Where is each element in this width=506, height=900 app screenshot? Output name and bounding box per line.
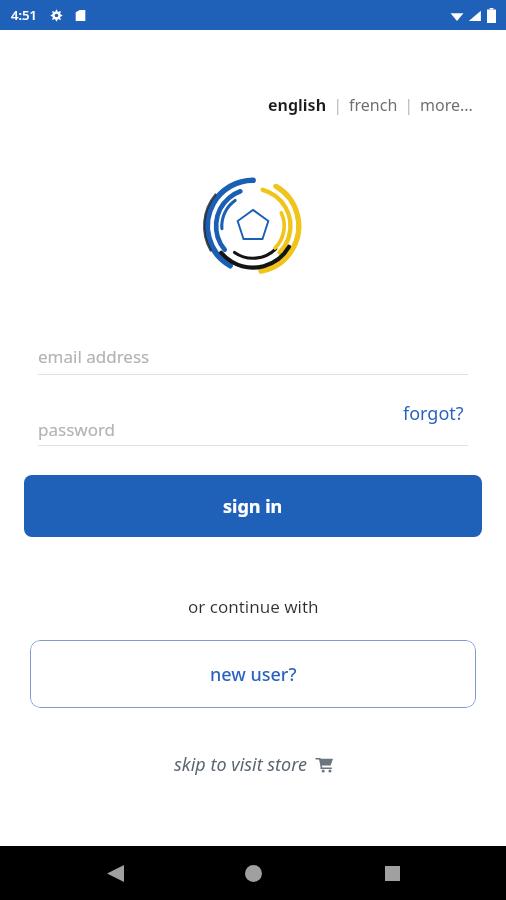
staticText: | <box>400 94 418 116</box>
button[interactable]: sign in <box>24 475 482 537</box>
button[interactable]: password <box>38 399 296 445</box>
staticText: french <box>349 94 398 116</box>
staticText: or continue with <box>188 595 319 618</box>
staticText: password <box>38 418 116 441</box>
staticText: | <box>329 94 347 116</box>
button[interactable]: more... <box>418 90 475 120</box>
staticText: skip to visit store <box>174 752 308 777</box>
button[interactable]: english <box>266 90 329 120</box>
button[interactable]: forgot? <box>399 399 468 428</box>
button[interactable]: email address <box>38 338 468 374</box>
staticText: 4:51 <box>11 6 37 24</box>
staticText: forgot? <box>403 401 464 426</box>
button[interactable]: Back <box>91 849 139 897</box>
staticText: new user? <box>210 662 297 687</box>
other: Store <box>316 756 333 773</box>
button[interactable]: Home <box>229 849 277 897</box>
staticText: more... <box>420 94 473 116</box>
button[interactable]: french <box>347 90 400 120</box>
staticText: sign in <box>223 494 283 519</box>
button[interactable]: Recents <box>368 849 416 897</box>
button[interactable]: new user? <box>30 640 476 708</box>
staticText: email address <box>38 345 150 368</box>
other: Spx logo <box>201 174 305 278</box>
staticText: english <box>268 94 327 116</box>
button[interactable]: skip to visit store <box>0 752 506 777</box>
